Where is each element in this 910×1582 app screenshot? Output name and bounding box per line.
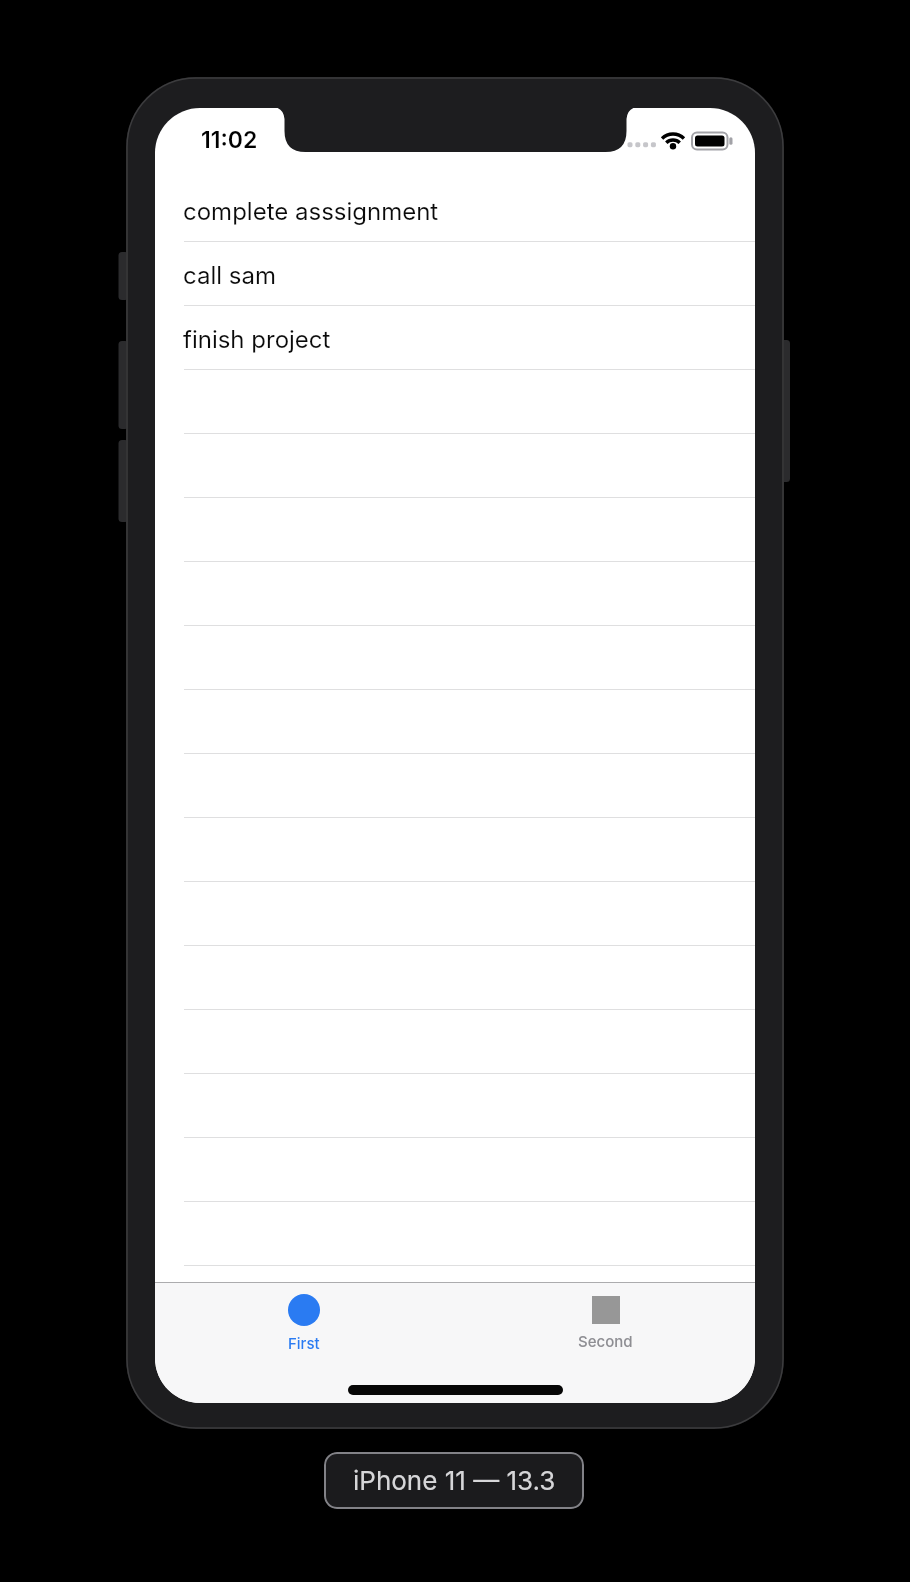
button[interactable]: call sam bbox=[155, 242, 755, 306]
staticText: iPhone 11 — 13.3 bbox=[353, 1465, 556, 1496]
staticText: First bbox=[288, 1334, 320, 1352]
button[interactable]: finish project bbox=[155, 306, 755, 370]
button[interactable]: complete asssignment bbox=[155, 178, 755, 242]
button[interactable]: First bbox=[262, 1294, 346, 1358]
staticText: complete asssignment bbox=[183, 197, 439, 226]
staticText: finish project bbox=[183, 325, 331, 354]
staticText: Second bbox=[578, 1332, 633, 1350]
button[interactable]: Second bbox=[563, 1294, 648, 1358]
staticText: call sam bbox=[183, 261, 276, 290]
staticText: 11:02 bbox=[201, 126, 258, 154]
